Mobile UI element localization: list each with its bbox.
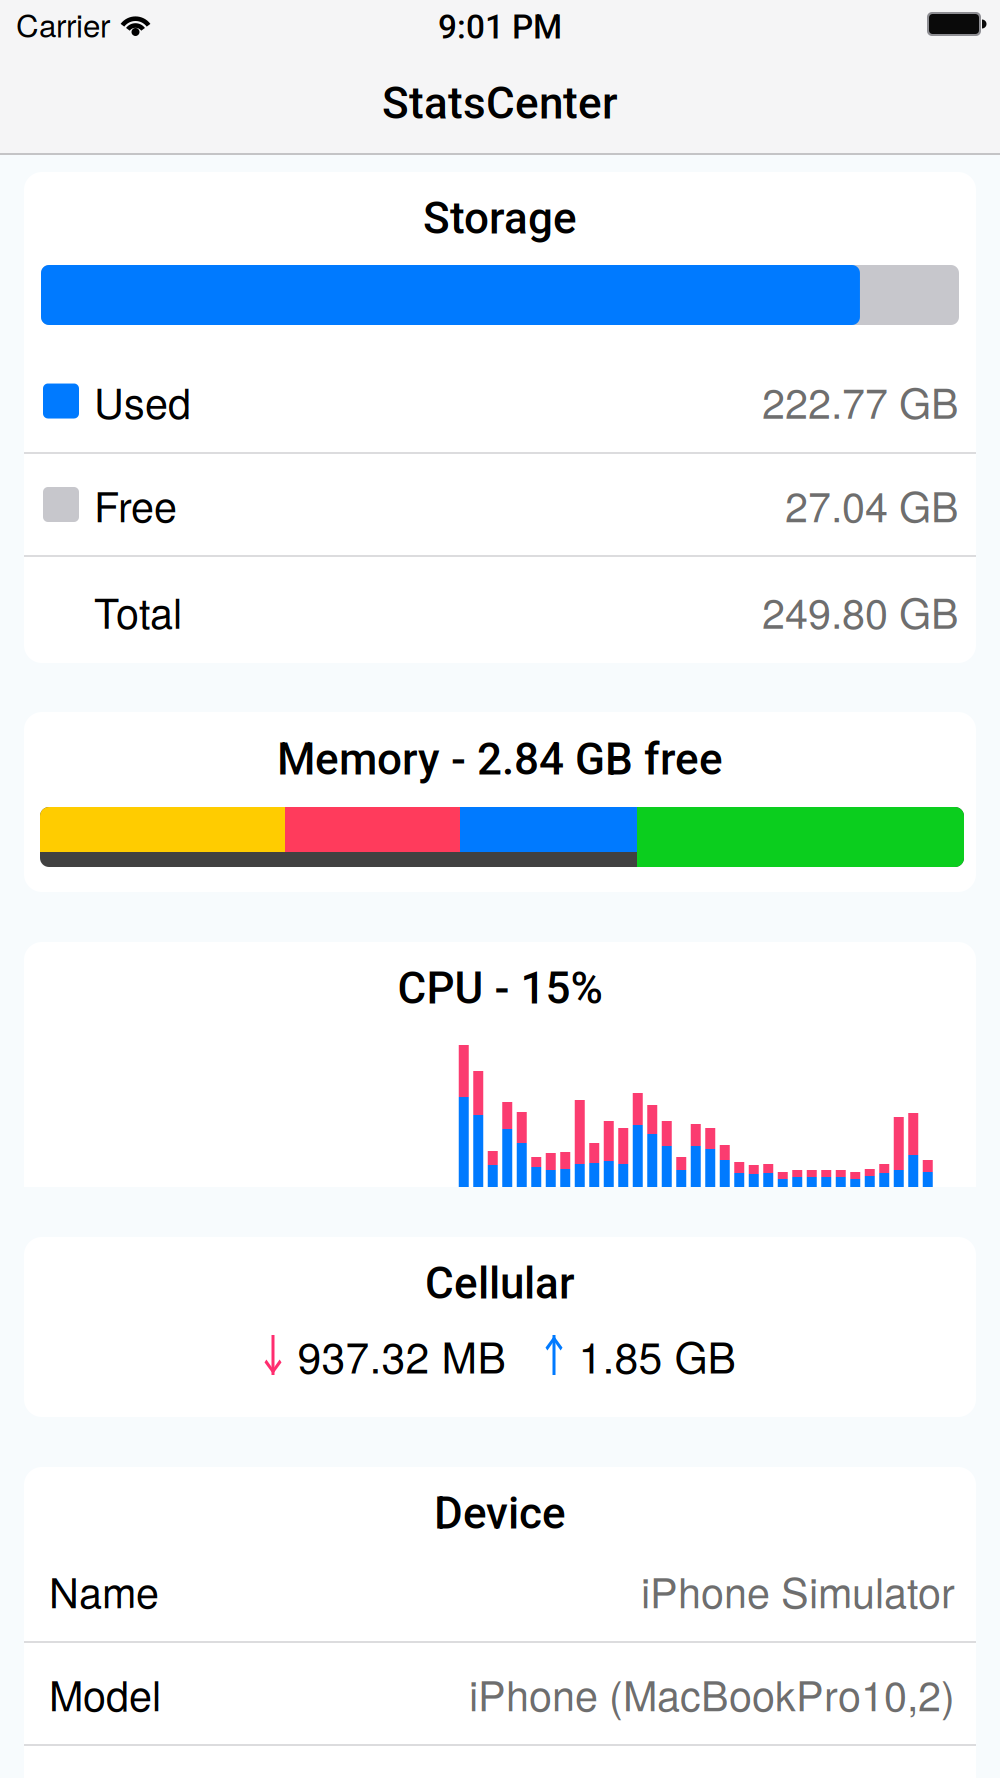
staticText: CPU - 15%	[397, 963, 602, 1014]
button[interactable]: Free	[24, 454, 976, 555]
staticText: Model	[49, 1664, 161, 1723]
staticText: 1.85 GB	[578, 1324, 735, 1386]
button[interactable]: Used	[24, 350, 976, 452]
button[interactable]: Name	[24, 1540, 976, 1641]
button[interactable]: Total	[24, 557, 976, 665]
staticText: Storage	[423, 193, 577, 244]
staticText: Name	[49, 1561, 159, 1620]
staticText: Free	[94, 475, 177, 534]
staticText: 9:01 PM	[438, 7, 562, 47]
staticText: StatsCenter	[382, 78, 618, 129]
staticText: Memory - 2.84 GB free	[277, 734, 723, 785]
staticText: 937.32 MB	[297, 1324, 505, 1386]
staticText: Total	[94, 581, 182, 641]
staticText: Device	[434, 1488, 566, 1539]
staticText: 222.77 GB	[762, 371, 959, 431]
button[interactable]: Model	[24, 1643, 976, 1744]
staticText: iPhone (MacBookPro10,2)	[469, 1664, 955, 1723]
staticText: Cellular	[425, 1258, 575, 1309]
staticText: Carrier	[16, 2, 110, 46]
staticText: Used	[94, 371, 191, 431]
staticText: 27.04 GB	[785, 475, 959, 534]
staticText: 249.80 GB	[762, 581, 959, 641]
staticText: iPhone Simulator	[641, 1561, 955, 1620]
